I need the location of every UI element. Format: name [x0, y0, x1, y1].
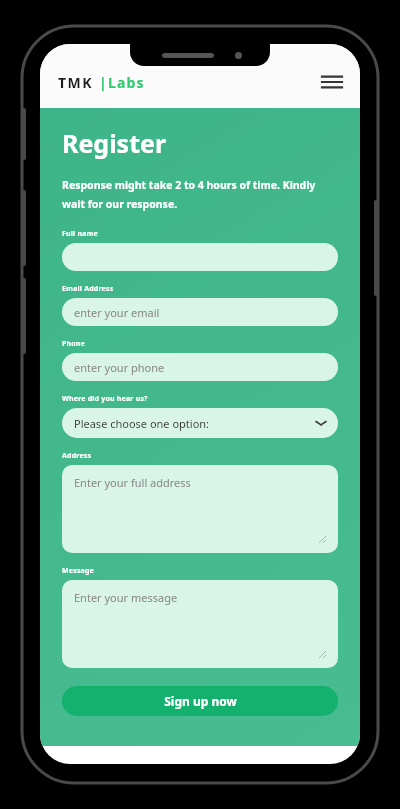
button[interactable]: Enter your message [62, 580, 338, 668]
button[interactable]: enter your email [62, 298, 338, 326]
button[interactable]: Please choose one option: [62, 408, 338, 438]
staticText: TMK [58, 73, 94, 92]
staticText: Address [62, 451, 92, 461]
staticText: |Labs [99, 73, 145, 92]
staticText: Enter your message [74, 590, 178, 605]
staticText: enter your email [74, 305, 160, 320]
staticText: Message [62, 566, 95, 576]
staticText: Phone [62, 339, 86, 349]
staticText: enter your phone [74, 360, 165, 375]
staticText: Where did you hear us? [62, 394, 148, 404]
staticText: Please choose one option: [74, 416, 210, 431]
staticText: Enter your full address [74, 475, 191, 490]
button[interactable]: enter your phone [62, 353, 338, 381]
staticText: Full name [62, 229, 98, 239]
button[interactable]: Sign up now [62, 686, 338, 716]
button[interactable]: TMK [58, 73, 145, 92]
button[interactable]: Menu [318, 68, 346, 96]
button[interactable]: Enter your full address [62, 465, 338, 553]
staticText: Sign up now [164, 693, 237, 709]
staticText: Response might take 2 to 4 hours of time… [62, 178, 338, 211]
staticText: Register [62, 126, 167, 160]
button[interactable] [62, 243, 338, 271]
staticText: Email Address [62, 284, 114, 294]
